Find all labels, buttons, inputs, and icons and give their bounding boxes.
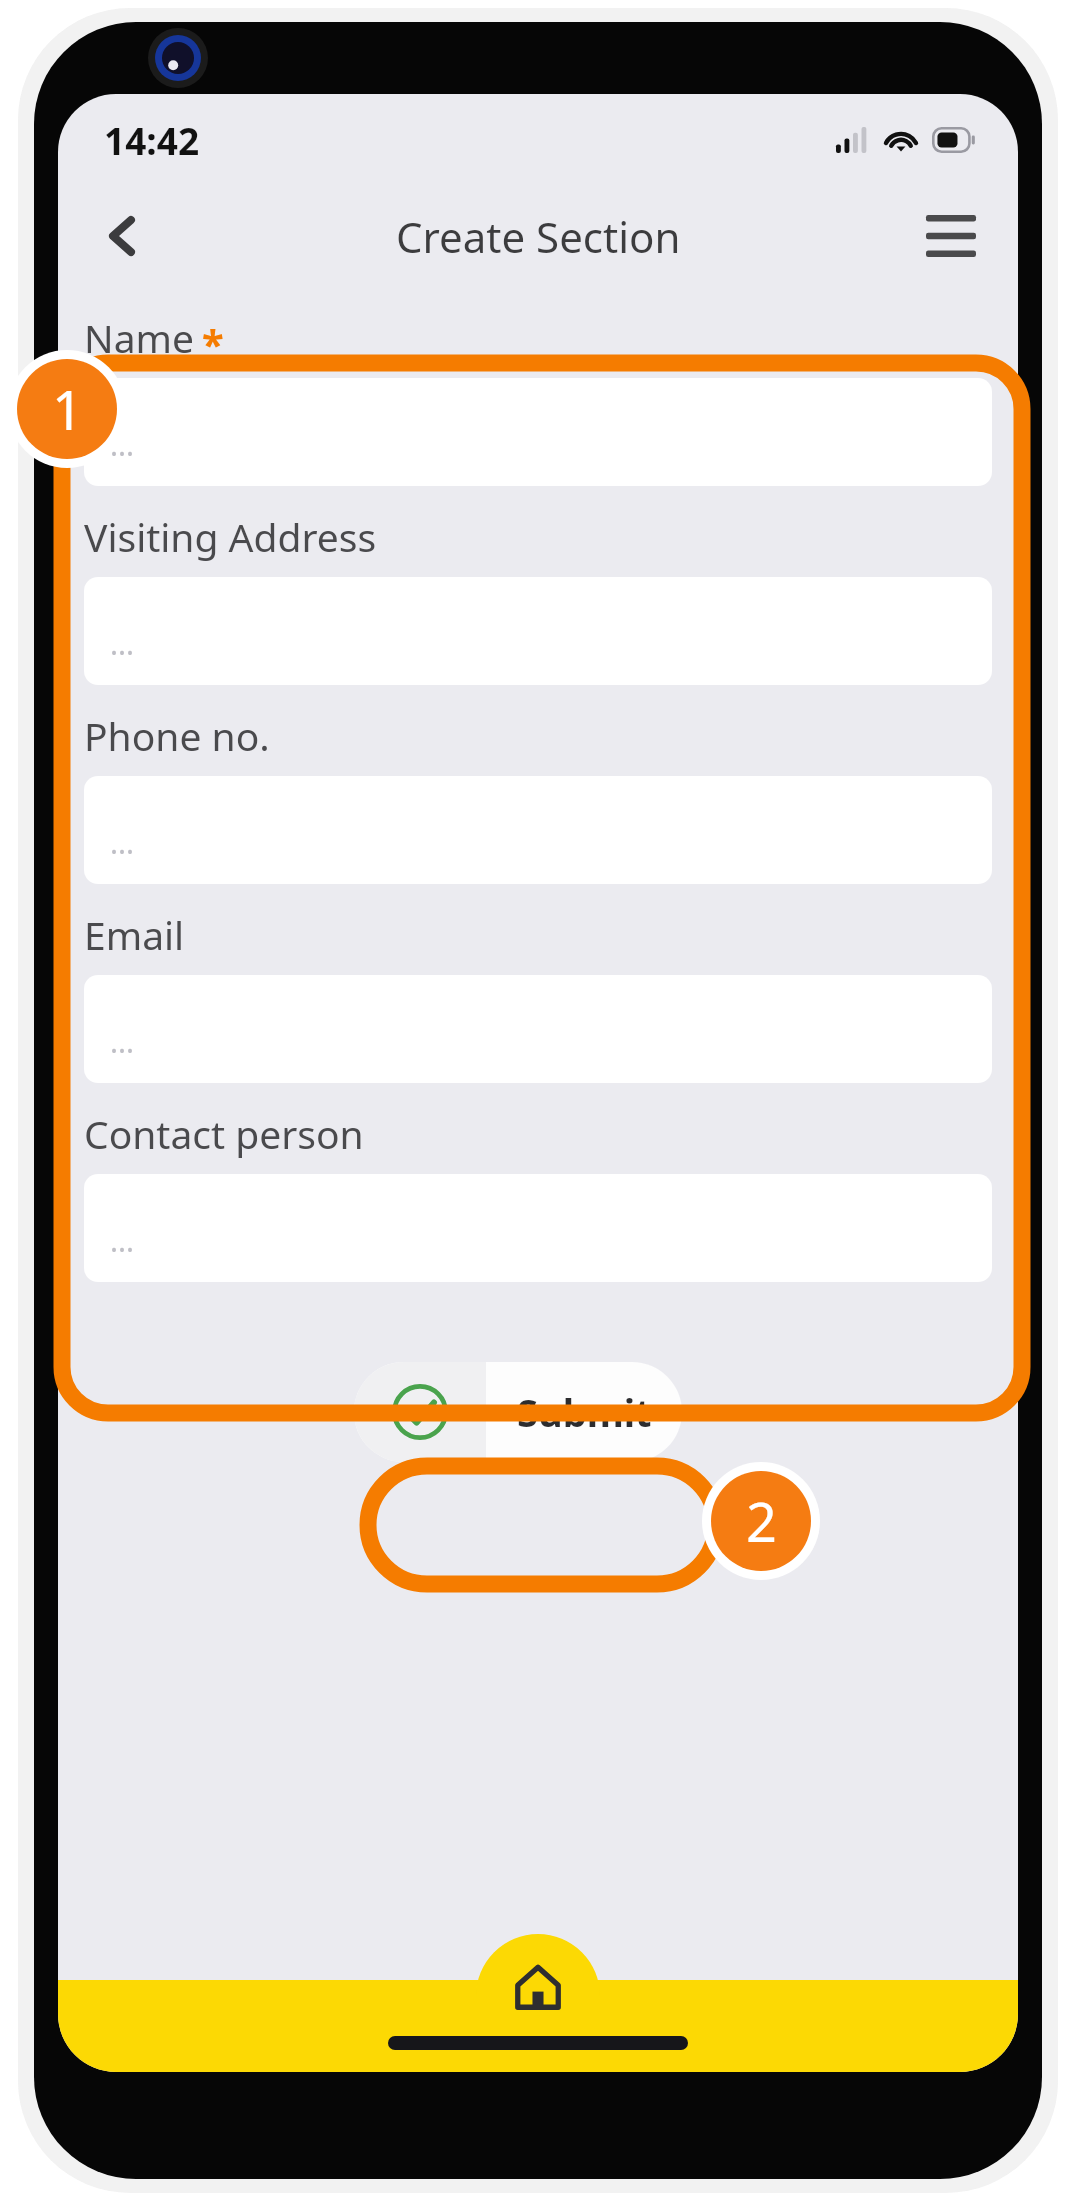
staticText: *: [202, 316, 224, 370]
button[interactable]: Home: [476, 1934, 600, 2072]
staticText: 2: [746, 1484, 777, 1558]
staticText: Contact person: [84, 1107, 364, 1160]
button[interactable]: Back: [80, 193, 166, 279]
staticText: 14:42: [104, 115, 200, 165]
button[interactable]: Submit: [354, 1362, 682, 1462]
staticText: Create Section: [396, 208, 681, 265]
staticText: Name: [84, 311, 194, 364]
staticText: Submit: [517, 1386, 652, 1438]
staticText: Email: [84, 908, 185, 961]
staticText: Phone no.: [84, 709, 270, 762]
staticText: 1: [52, 372, 83, 446]
button[interactable]: ...: [84, 378, 992, 486]
button[interactable]: Menu: [908, 193, 994, 279]
staticText: Visiting Address: [84, 510, 377, 563]
staticText: ...: [110, 424, 135, 465]
staticText: ...: [110, 623, 135, 664]
staticText: ...: [110, 822, 135, 863]
staticText: ...: [110, 1220, 135, 1261]
staticText: ...: [110, 1021, 135, 1062]
